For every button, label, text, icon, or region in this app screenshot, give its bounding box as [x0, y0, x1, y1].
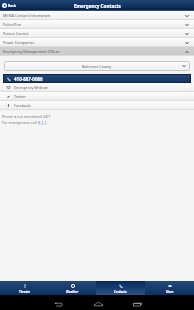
staticText: Power Companies [3, 40, 35, 45]
button[interactable]: Home [92, 298, 104, 310]
staticText: Threats [19, 290, 30, 294]
staticText: Back [8, 3, 17, 8]
staticText: Police/Fire [3, 22, 21, 27]
staticText: . [47, 120, 48, 125]
button[interactable]: Emergency Website [0, 83, 194, 92]
staticText: Emergency Website [14, 85, 49, 90]
staticText: Emergency Contacts [74, 3, 121, 9]
button[interactable]: Back [1, 2, 18, 9]
staticText: For emergencies call [2, 120, 38, 125]
button[interactable]: Power Companies [0, 38, 194, 47]
button[interactable]: Back [52, 298, 64, 310]
staticText: Contacts [114, 290, 127, 294]
button[interactable]: MEMA Contact Information [0, 11, 194, 20]
staticText: Emergency Management Offices [3, 49, 60, 54]
staticText: MEMA Contact Information [3, 13, 51, 18]
button[interactable]: Facebook [0, 101, 194, 110]
staticText: Twitter [14, 94, 27, 99]
staticText: Facebook [14, 103, 31, 108]
button[interactable]: Police/Fire [0, 20, 194, 29]
button[interactable]: Contacts [96, 281, 145, 295]
button[interactable]: Emergency Management Offices [0, 47, 194, 56]
button[interactable]: Twitter [0, 92, 194, 101]
button[interactable]: Poison Control [0, 29, 194, 38]
button[interactable]: Threats [0, 281, 48, 295]
staticText: 410-887-0066 [14, 76, 43, 82]
staticText: Poison Control [3, 31, 29, 36]
button[interactable]: 9-1-1 [38, 120, 47, 125]
button[interactable]: 410-887-0066 [3, 74, 191, 83]
staticText: Phone is not monitored 24/7. [2, 114, 52, 119]
staticText: Weather [66, 290, 79, 294]
button[interactable]: Recent apps [131, 298, 143, 310]
staticText: More [166, 290, 174, 294]
button[interactable]: Weather [48, 281, 96, 295]
staticText: Baltimore County [82, 64, 112, 69]
button[interactable]: Baltimore County [4, 61, 190, 71]
button[interactable]: More [145, 281, 194, 295]
